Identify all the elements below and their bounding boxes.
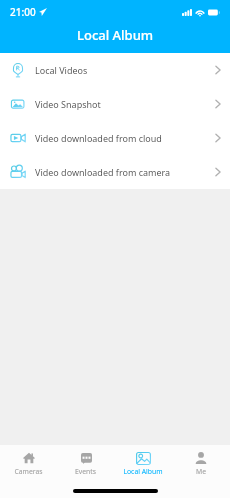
staticText: Video Snapshot <box>35 98 101 110</box>
button[interactable]: Cameras <box>0 445 57 486</box>
staticText: Video downloaded from camera <box>35 166 171 178</box>
button[interactable]: Video downloaded from cloud <box>0 121 230 155</box>
staticText: Events <box>75 467 96 476</box>
button[interactable]: Local Album <box>114 445 172 486</box>
button[interactable]: Video Snapshot <box>0 87 230 121</box>
staticText: Me <box>196 467 206 476</box>
staticText: Local Videos <box>35 64 88 76</box>
staticText: 21:00 <box>10 5 36 19</box>
staticText: Local Album <box>77 26 154 44</box>
staticText: Video downloaded from cloud <box>35 132 162 144</box>
button[interactable]: Video downloaded from camera <box>0 155 230 189</box>
staticText: Local Album <box>123 467 163 476</box>
button[interactable]: Me <box>172 445 230 486</box>
staticText: Cameras <box>14 467 43 476</box>
button[interactable]: Events <box>57 445 114 486</box>
button[interactable]: Local Videos <box>0 53 230 87</box>
